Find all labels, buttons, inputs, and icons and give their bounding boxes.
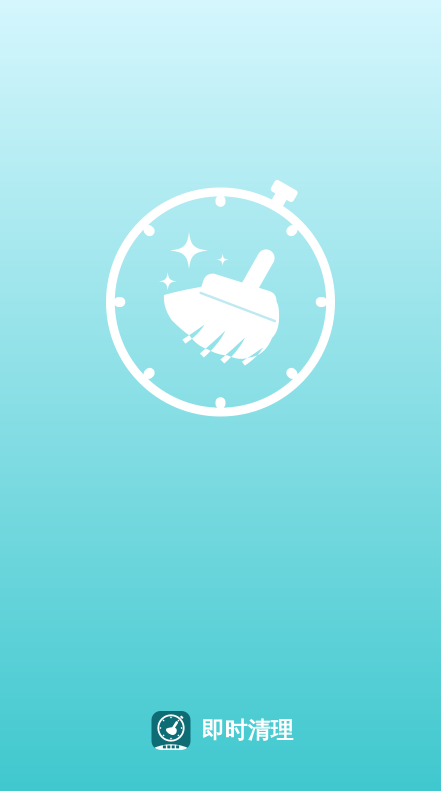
staticText: 即时清理 xyxy=(201,717,293,744)
